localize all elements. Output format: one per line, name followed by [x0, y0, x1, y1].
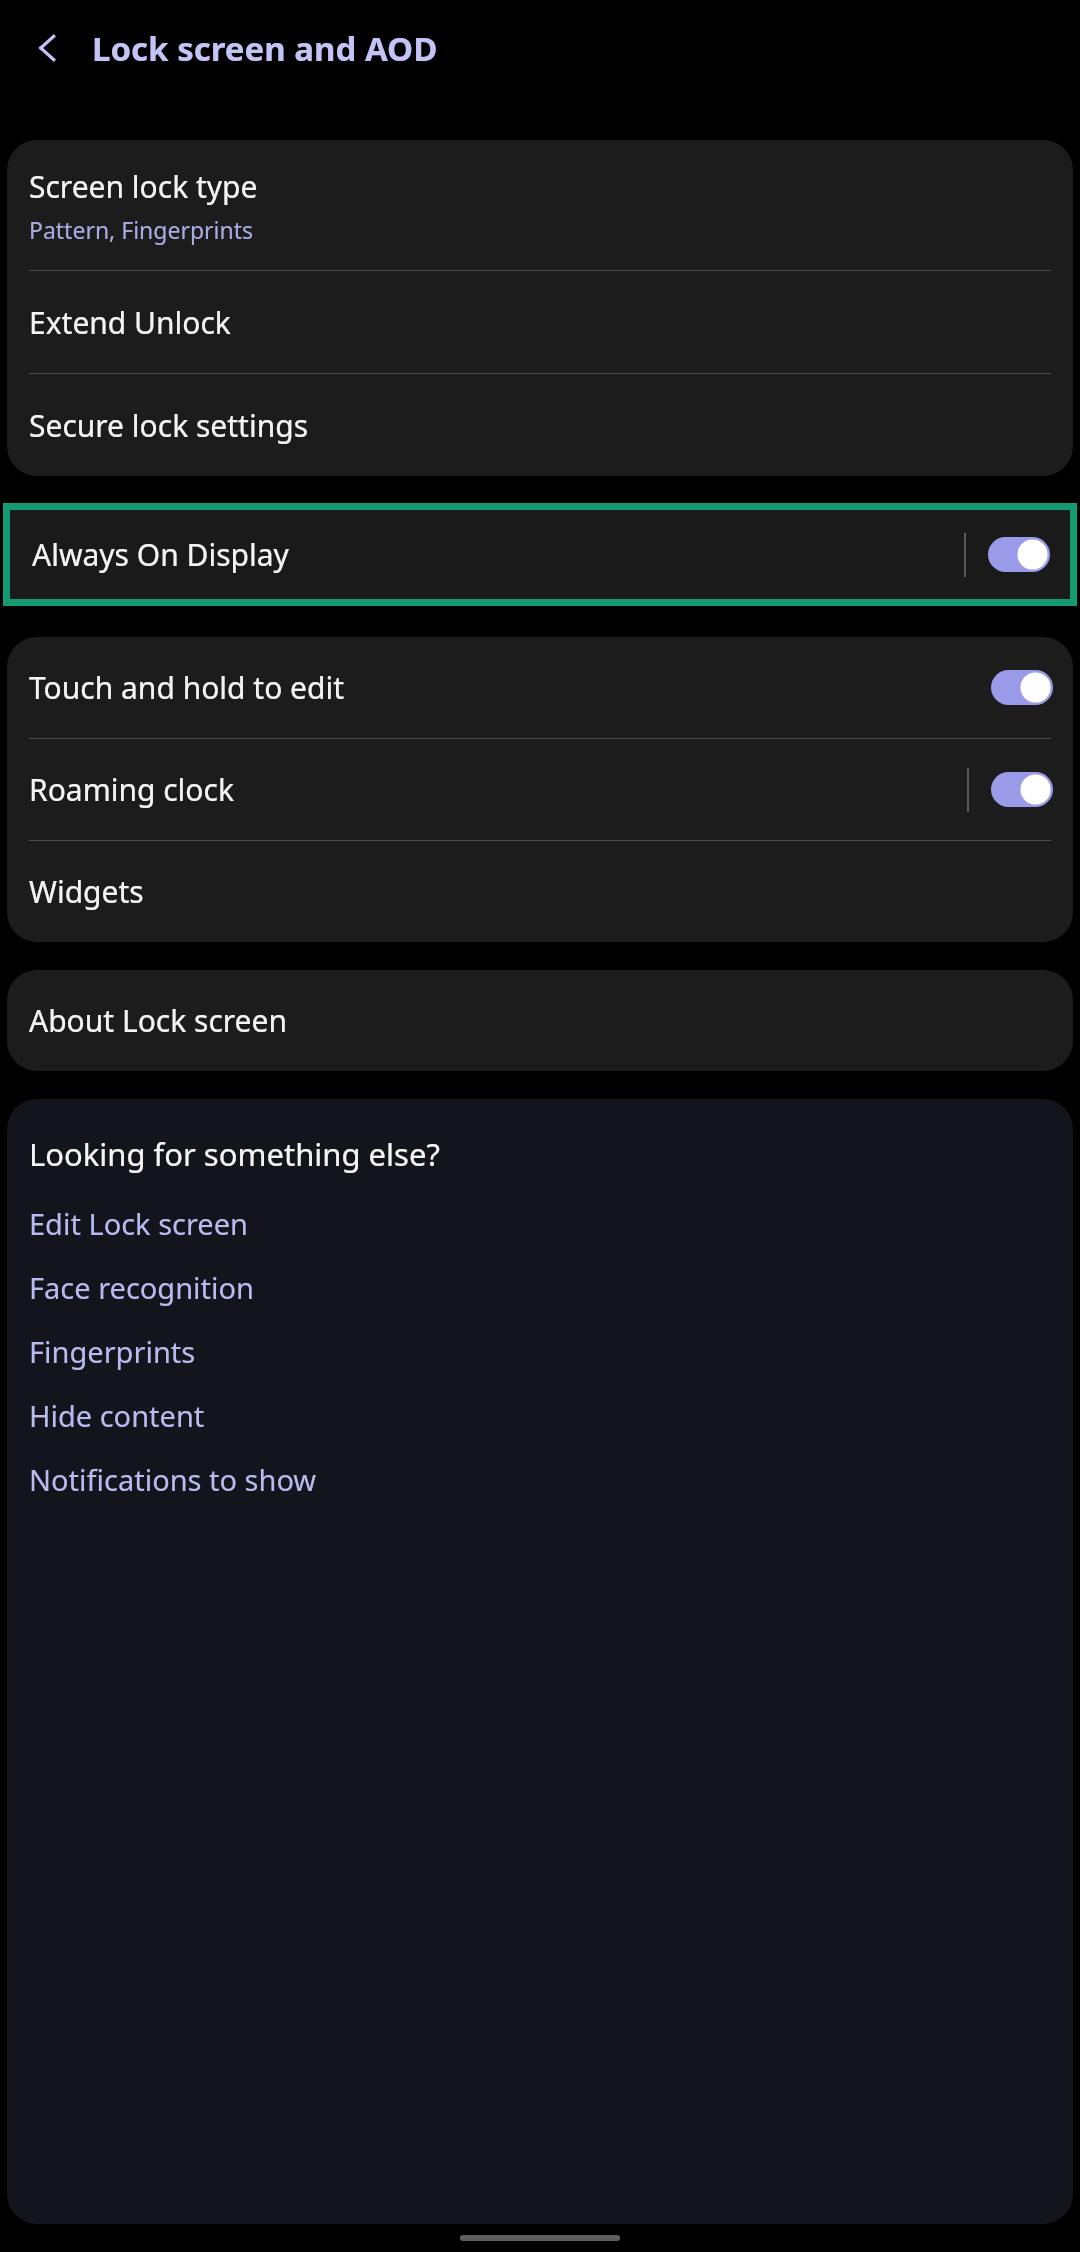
staticText: Extend Unlock: [29, 302, 231, 343]
button[interactable]: Secure lock settings: [7, 374, 1073, 476]
staticText: Pattern, Fingerprints: [29, 214, 254, 245]
button[interactable]: Always On Display: [10, 510, 1070, 599]
staticText: Looking for something else?: [29, 1133, 440, 1175]
button[interactable]: Edit Lock screen: [7, 1201, 1073, 1246]
button[interactable]: Notifications to show: [7, 1457, 1073, 1502]
staticText: Screen lock type: [29, 166, 258, 207]
staticText: Fingerprints: [29, 1332, 196, 1371]
button[interactable]: Extend Unlock: [7, 271, 1073, 373]
staticText: Secure lock settings: [29, 405, 308, 446]
button[interactable]: Roaming clock: [7, 739, 1073, 840]
button[interactable]: Widgets: [7, 841, 1073, 942]
button[interactable]: Hide content: [7, 1393, 1073, 1438]
staticText: Hide content: [29, 1396, 205, 1435]
button[interactable]: Screen lock type: [7, 140, 1073, 270]
button[interactable]: Fingerprints: [7, 1329, 1073, 1374]
staticText: About Lock screen: [29, 1000, 287, 1041]
staticText: Widgets: [29, 871, 144, 912]
button[interactable]: Touch and hold to edit: [7, 637, 1073, 738]
staticText: Roaming clock: [29, 769, 967, 810]
staticText: Notifications to show: [29, 1460, 317, 1499]
button[interactable]: About Lock screen: [7, 970, 1073, 1071]
button[interactable]: Back: [22, 22, 74, 74]
button[interactable]: Face recognition: [7, 1265, 1073, 1310]
staticText: Edit Lock screen: [29, 1204, 248, 1243]
staticText: Touch and hold to edit: [29, 667, 991, 708]
staticText: Lock screen and AOD: [92, 26, 438, 71]
staticText: Face recognition: [29, 1268, 255, 1307]
staticText: Always On Display: [32, 534, 964, 575]
